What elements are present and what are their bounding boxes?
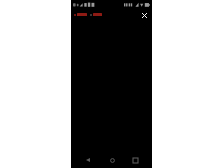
button[interactable] bbox=[74, 10, 87, 19]
button[interactable]: Back bbox=[81, 153, 95, 167]
button[interactable]: Home bbox=[105, 153, 119, 167]
button[interactable]: Recent apps bbox=[128, 153, 142, 167]
button[interactable]: Close bbox=[139, 10, 149, 20]
button[interactable] bbox=[90, 10, 102, 19]
